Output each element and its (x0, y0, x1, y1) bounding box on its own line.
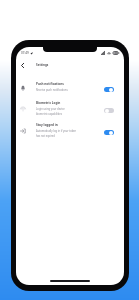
button[interactable]: Stay logged in (16, 119, 124, 142)
staticText: Push notifications (36, 82, 64, 86)
staticText: Login using your device biometric capabi… (36, 107, 65, 116)
staticText: Settings (36, 63, 49, 67)
button[interactable]: Push notifications (16, 76, 124, 98)
staticText: Stay logged in (36, 123, 58, 127)
button[interactable]: Back (17, 60, 27, 70)
staticText: Biometric Login (36, 101, 61, 105)
button[interactable]: On (104, 87, 114, 92)
button[interactable]: On (104, 130, 114, 135)
staticText: Receive push notifications (36, 88, 68, 92)
staticText: Automatically log in if your token has n… (36, 129, 77, 138)
staticText: 07:49 (21, 51, 29, 55)
button[interactable]: Off (104, 108, 114, 113)
button[interactable]: Biometric Login (16, 98, 124, 119)
